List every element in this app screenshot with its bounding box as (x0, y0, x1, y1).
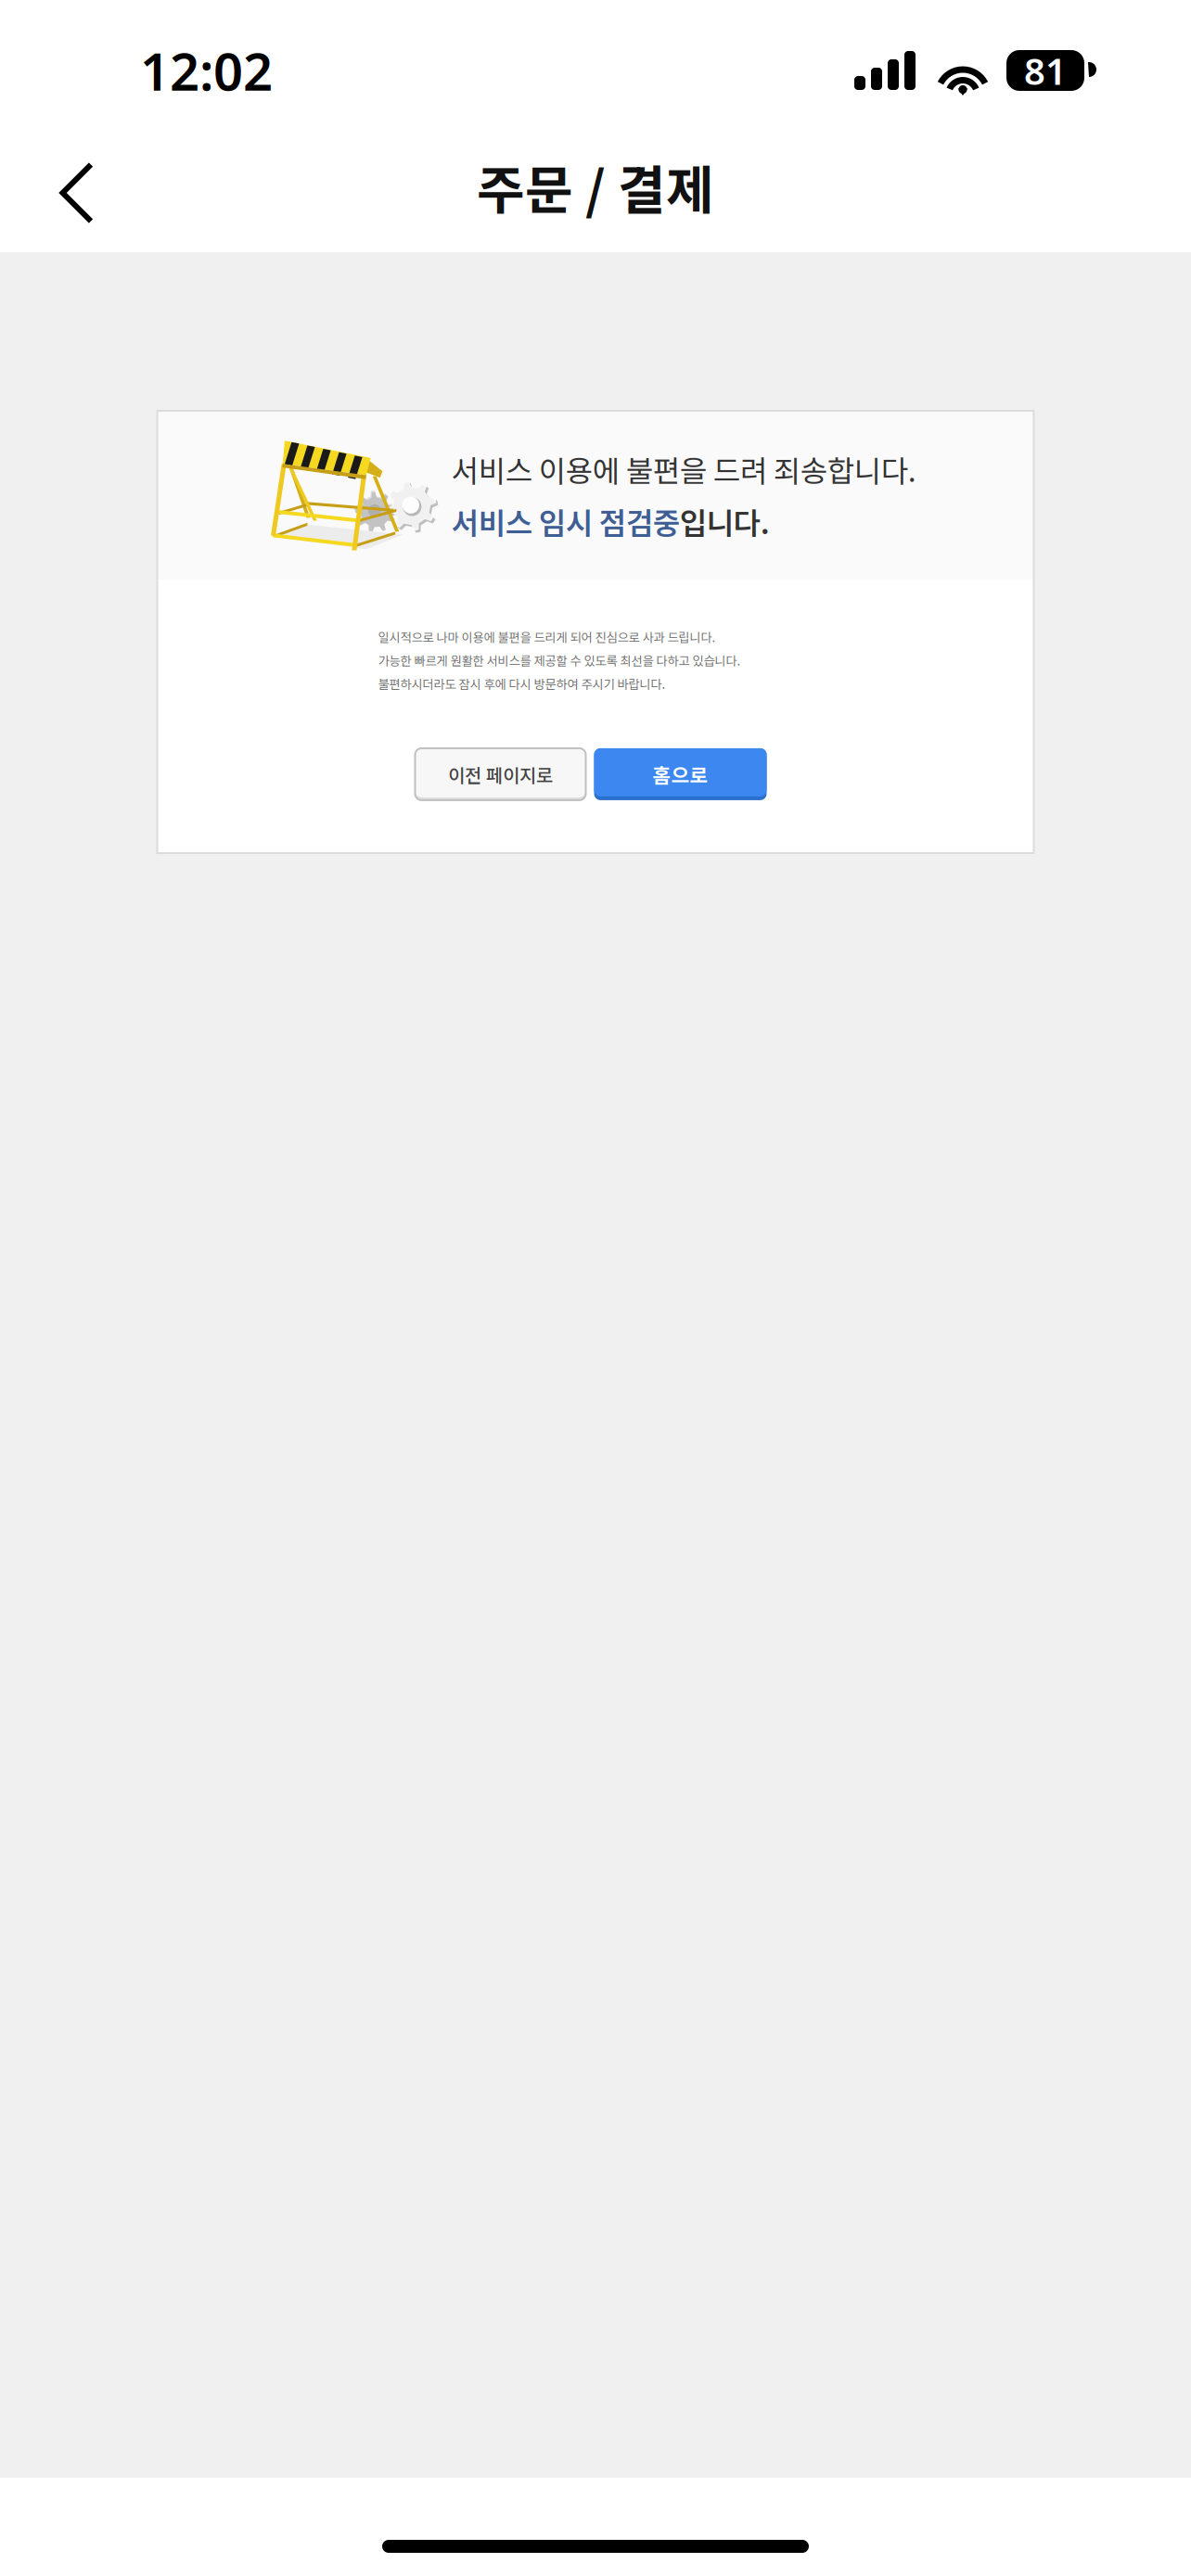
staticText: 서비스 이용에 불편을 드려 죄송합니다. (452, 448, 916, 491)
staticText: 주문 / 결제 (477, 149, 714, 224)
staticText: 입니다. (680, 500, 770, 543)
staticText: 서비스 임시 점검중 (452, 500, 680, 543)
staticText: 81 (1024, 46, 1067, 95)
staticText: 12:02 (140, 36, 273, 105)
button[interactable]: Back (0, 125, 137, 248)
button[interactable]: 홈으로 (594, 748, 767, 800)
staticText: 불편하시더라도 잠시 후에 다시 방문하여 주시기 바랍니다. (378, 675, 666, 693)
staticText: 일시적으로 나마 이용에 불편을 드리게 되어 진심으로 사과 드립니다. (378, 628, 716, 646)
staticText: 가능한 빠르게 원활한 서비스를 제공할 수 있도록 최선을 다하고 있습니다. (378, 651, 741, 669)
staticText: 홈으로 (653, 760, 708, 789)
button[interactable]: 이전 페이지로 (415, 748, 586, 800)
staticText: 이전 페이지로 (448, 761, 553, 788)
